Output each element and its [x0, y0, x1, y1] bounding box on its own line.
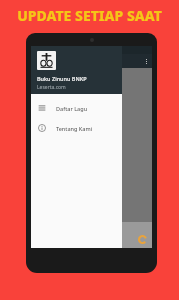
staticText: UPDATE SETIAP SAAT	[17, 6, 162, 25]
staticText: Daftar Lagu	[56, 105, 88, 112]
staticText: Tentang Kami	[56, 125, 93, 132]
staticText: Leserta.com	[37, 84, 66, 91]
button[interactable]: Daftar Lagu	[31, 98, 122, 118]
button[interactable]: Tentang Kami	[31, 118, 122, 138]
staticText: Buku Zinunu BNKP	[37, 75, 87, 82]
